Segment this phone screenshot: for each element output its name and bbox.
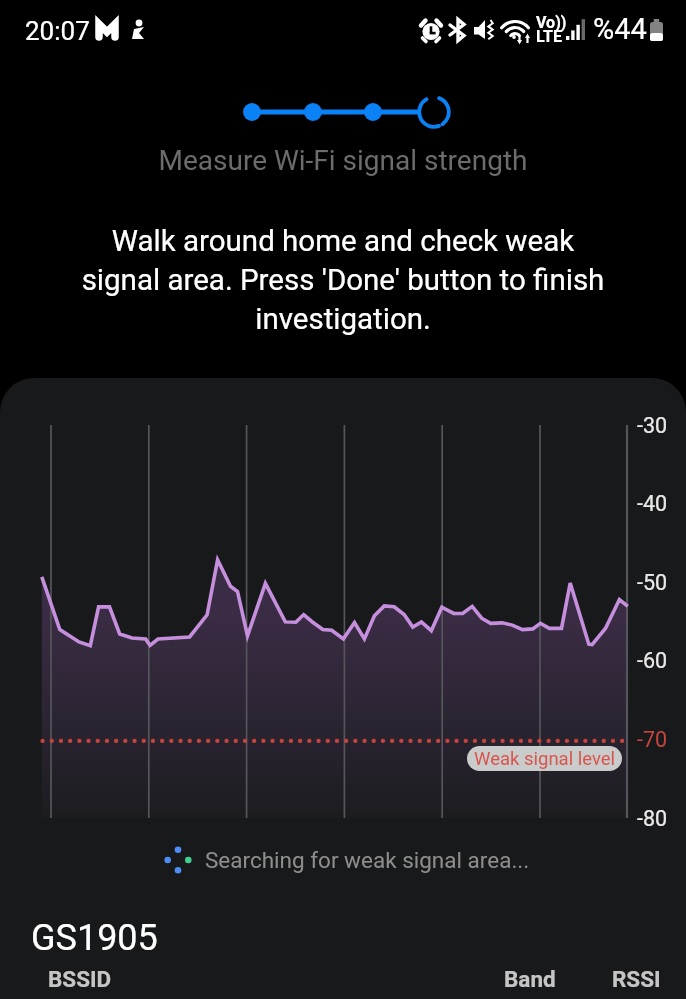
staticText: -50 [637, 570, 668, 595]
other: Measurement progress, step 4 of 4 [0, 93, 686, 133]
button[interactable]: BSSID [40, 962, 120, 996]
staticText: -30 [637, 413, 668, 438]
staticText: 20:07 [25, 16, 90, 46]
button[interactable]: RSSI [604, 962, 670, 996]
staticText: -40 [637, 491, 668, 516]
staticText: RSSI [612, 966, 661, 992]
button[interactable]: Band [496, 962, 566, 996]
staticText: LTE [536, 27, 562, 46]
staticText: Weak signal level [474, 748, 616, 770]
staticText: -70 [637, 727, 668, 752]
staticText: Measure Wi-Fi signal strength [0, 144, 686, 177]
staticText: BSSID [48, 966, 112, 992]
staticText: %44 [593, 12, 647, 46]
staticText: Band [504, 966, 556, 992]
staticText: -80 [637, 806, 668, 831]
staticText: GS1905 [31, 917, 158, 959]
staticText: Walk around home and check weak signal a… [0, 224, 686, 336]
staticText: Searching for weak signal area... [205, 847, 530, 873]
staticText: -60 [637, 648, 668, 673]
staticText: Vo)) [536, 13, 567, 32]
